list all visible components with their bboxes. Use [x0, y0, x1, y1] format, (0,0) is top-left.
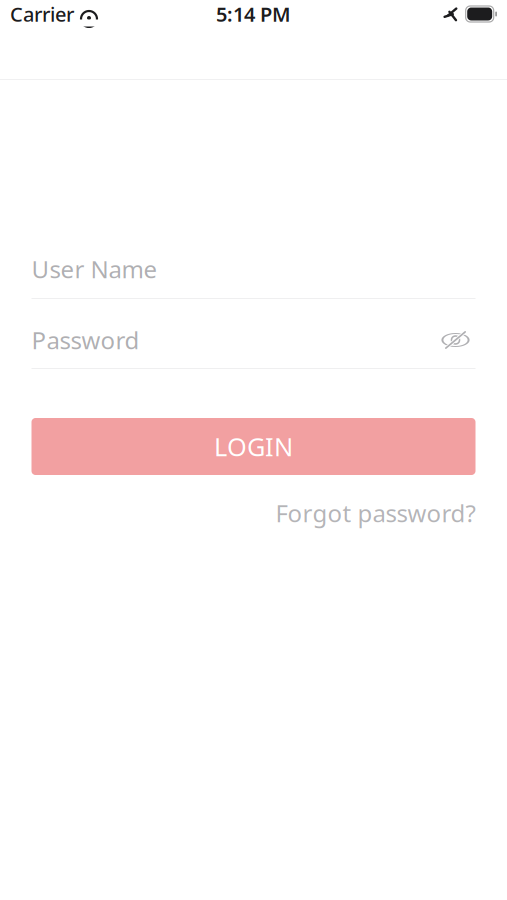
- staticText: User Name: [31, 253, 157, 285]
- staticText: Carrier: [10, 1, 74, 27]
- button[interactable]: Show password: [435, 326, 475, 354]
- staticText: LOGIN: [214, 430, 293, 463]
- button[interactable]: LOGIN: [31, 418, 475, 475]
- button[interactable]: Forgot password?: [275, 497, 475, 529]
- staticText: 5:14 PM: [216, 1, 291, 27]
- staticText: Password: [31, 324, 139, 356]
- staticText: Forgot password?: [275, 497, 475, 529]
